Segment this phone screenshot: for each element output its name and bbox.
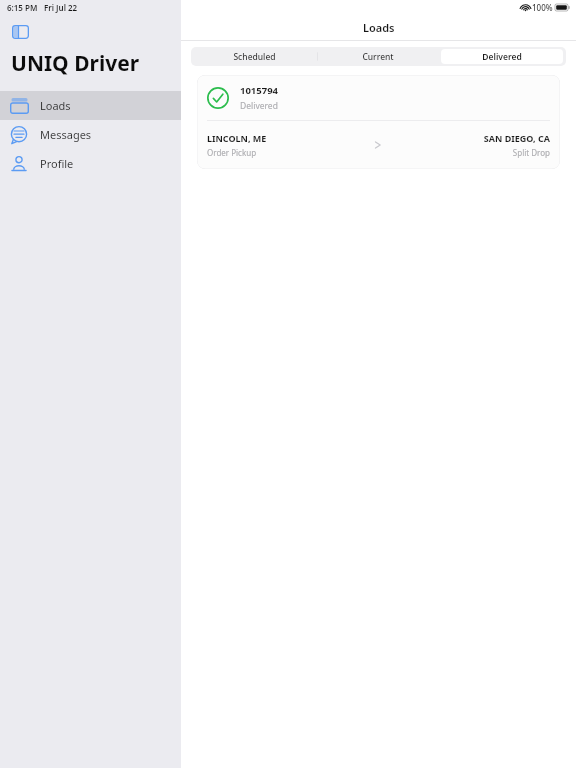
- staticText: 100%: [532, 2, 553, 13]
- staticText: Delivered: [240, 100, 278, 112]
- staticText: Split Drop: [512, 147, 550, 158]
- staticText: LINCOLN, ME: [207, 132, 267, 144]
- staticText: Order Pickup: [207, 147, 257, 158]
- staticText: Delivered: [482, 51, 522, 63]
- staticText: UNIQ Driver: [11, 49, 140, 78]
- button[interactable]: 1015794: [197, 75, 560, 169]
- button[interactable]: Toggle sidebar: [9, 21, 31, 43]
- button[interactable]: Scheduled: [194, 49, 315, 64]
- button[interactable]: Messages: [0, 120, 181, 149]
- button[interactable]: Delivered: [441, 49, 563, 64]
- staticText: Current: [362, 51, 394, 63]
- staticText: 1015794: [240, 84, 279, 97]
- staticText: Loads: [363, 20, 395, 35]
- staticText: Loads: [40, 98, 71, 113]
- button[interactable]: Profile: [0, 149, 181, 178]
- staticText: Profile: [40, 156, 74, 171]
- staticText: Scheduled: [233, 51, 276, 63]
- button[interactable]: Current: [317, 49, 439, 64]
- button[interactable]: Loads: [0, 91, 181, 120]
- staticText: Messages: [40, 127, 92, 142]
- staticText: SAN DIEGO, CA: [483, 132, 550, 144]
- staticText: Fri Jul 22: [44, 2, 78, 13]
- staticText: 6:15 PM: [7, 2, 38, 13]
